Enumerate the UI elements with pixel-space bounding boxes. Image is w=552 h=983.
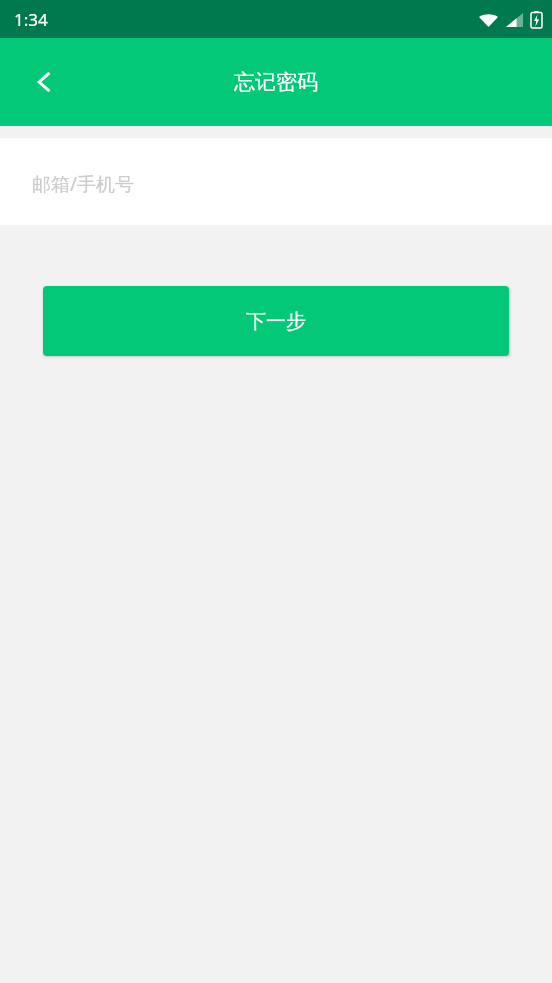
staticText: 1:34 [14, 8, 48, 31]
staticText: 邮箱/手机号 [32, 171, 135, 197]
button[interactable]: 邮箱/手机号 [0, 138, 552, 225]
staticText: 下一步 [246, 309, 306, 334]
staticText: 忘记密码 [234, 69, 318, 95]
button[interactable]: 下一步 [43, 286, 509, 356]
button[interactable]: Back [20, 58, 68, 106]
